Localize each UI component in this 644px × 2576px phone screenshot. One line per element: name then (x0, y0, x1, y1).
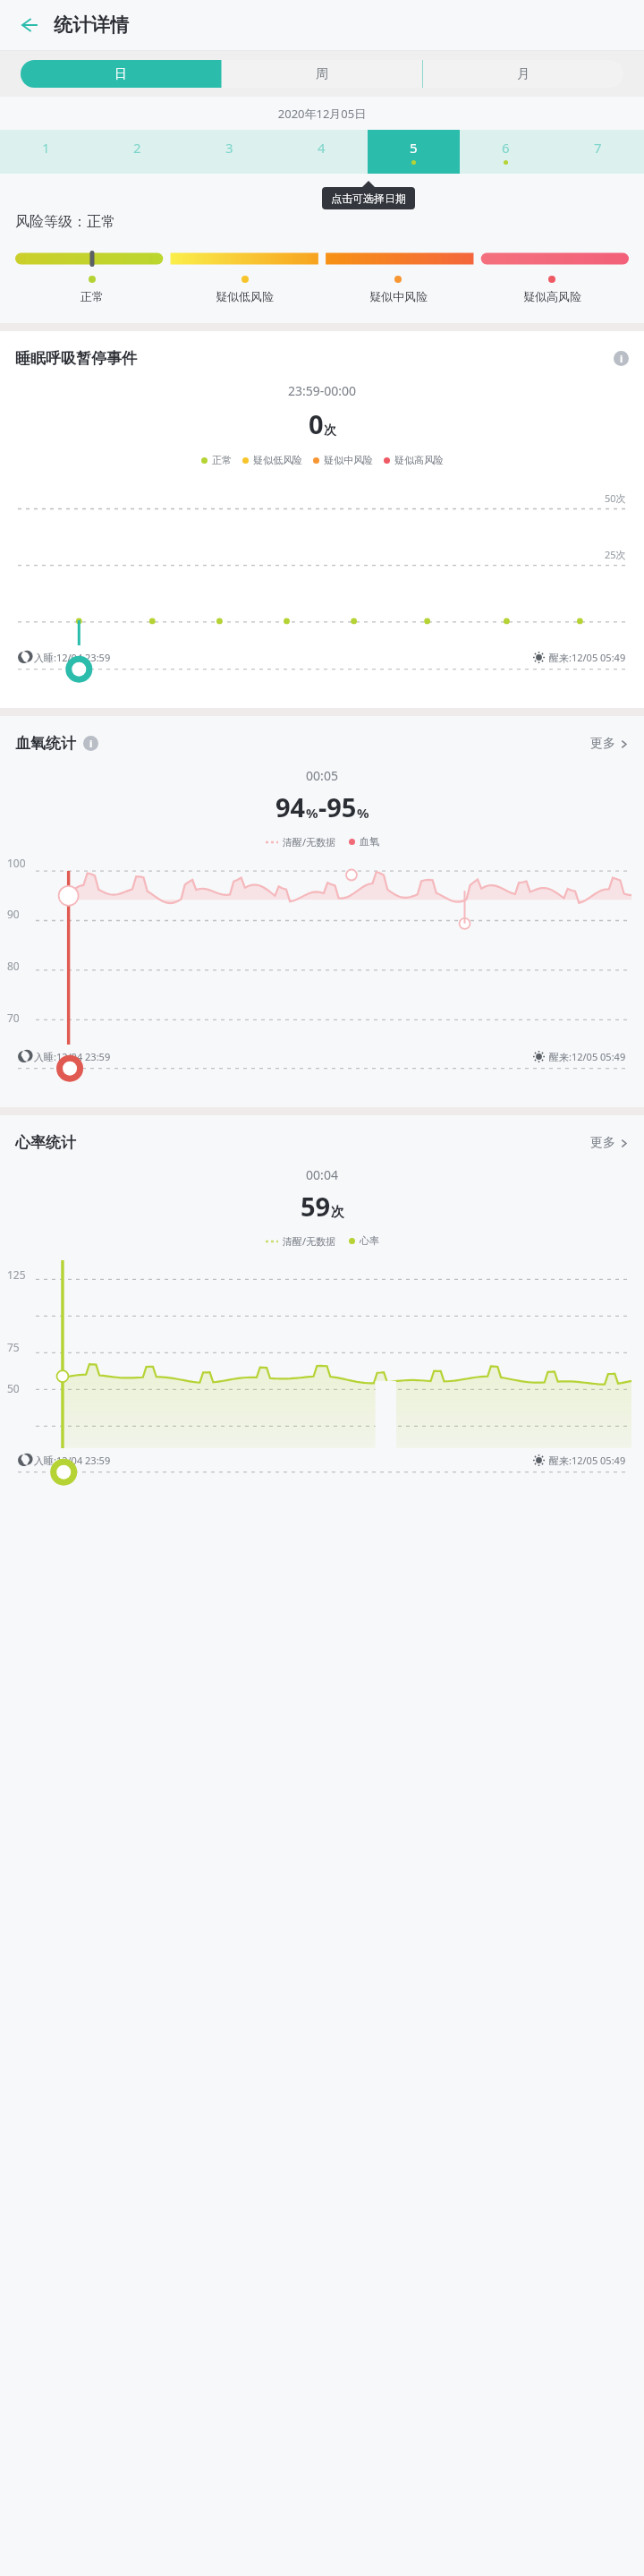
staticText: 23:59-00:00 (0, 382, 644, 399)
staticText: 00:05 (0, 767, 644, 784)
staticText: 疑似高风险 (523, 289, 581, 303)
staticText: 4 (318, 139, 326, 157)
staticText: 3 (225, 139, 233, 157)
button[interactable]: 4 (275, 130, 368, 174)
button[interactable]: 6 (460, 130, 552, 174)
staticText: 疑似低风险 (216, 289, 274, 303)
staticText: 入睡:12/04 23:59 (34, 1454, 111, 1467)
staticText: 90 (7, 907, 20, 921)
staticText: 醒来:12/05 05:49 (549, 1050, 626, 1063)
staticText: 心率 (360, 1234, 379, 1247)
staticText: i (620, 352, 623, 365)
staticText: 睡眠呼吸暂停事件 (15, 349, 137, 368)
staticText: 点击可选择日期 (331, 192, 406, 205)
staticText: 次 (324, 422, 336, 439)
button[interactable]: 1 (0, 130, 91, 174)
staticText: 正常 (212, 454, 232, 466)
staticText: 6 (502, 139, 510, 157)
staticText: % (306, 804, 318, 822)
staticText: 50次 (605, 491, 626, 505)
staticText: 统计详情 (54, 13, 129, 37)
staticText: 更多 (590, 736, 615, 752)
staticText: 00:04 (0, 1166, 644, 1183)
staticText: 清醒/无数据 (283, 1234, 336, 1248)
staticText: 风险等级：正常 (15, 213, 115, 231)
staticText: 入睡:12/04 23:59 (34, 1050, 111, 1063)
staticText: 5 (410, 139, 418, 157)
button[interactable]: 2 (91, 130, 183, 174)
staticText: 0 (309, 406, 324, 441)
staticText: 周 (316, 66, 328, 82)
button[interactable]: 3 (183, 130, 275, 174)
button[interactable]: 7 (552, 130, 644, 174)
button[interactable]: 月 (423, 60, 623, 88)
staticText: 7 (594, 139, 602, 157)
staticText: 2020年12月05日 (0, 106, 644, 122)
staticText: 59 (301, 1189, 331, 1224)
button[interactable]: 日 (21, 60, 221, 88)
button[interactable]: 周 (222, 60, 422, 88)
staticText: % (357, 804, 369, 822)
button[interactable]: Info (83, 736, 98, 751)
staticText: 血氧 (360, 835, 379, 848)
staticText: 醒来:12/05 05:49 (549, 651, 626, 664)
staticText: 血氧统计 (15, 734, 76, 753)
staticText: 70 (7, 1011, 20, 1025)
staticText: 75 (7, 1340, 20, 1354)
staticText: -95 (318, 789, 357, 824)
staticText: 疑似中风险 (324, 454, 373, 466)
staticText: 正常 (80, 289, 104, 303)
staticText: 100 (7, 856, 26, 870)
staticText: 入睡:12/04 23:59 (34, 651, 111, 664)
button[interactable]: 更多 (590, 1135, 629, 1151)
staticText: 更多 (590, 1135, 615, 1151)
staticText: 次 (331, 1204, 344, 1221)
staticText: 月 (517, 66, 530, 82)
button[interactable]: 5 (368, 130, 460, 174)
staticText: 清醒/无数据 (283, 835, 336, 849)
staticText: 94 (275, 789, 306, 824)
button[interactable]: Info (614, 351, 629, 366)
staticText: 日 (114, 66, 127, 82)
staticText: 80 (7, 959, 20, 973)
staticText: 125 (7, 1267, 26, 1282)
staticText: i (89, 737, 93, 750)
staticText: 疑似高风险 (394, 454, 444, 466)
staticText: 疑似低风险 (253, 454, 302, 466)
button[interactable]: Back (9, 5, 48, 45)
staticText: 1 (42, 139, 50, 157)
button[interactable]: 更多 (590, 736, 629, 752)
staticText: 心率统计 (15, 1133, 76, 1152)
staticText: 疑似中风险 (369, 289, 428, 303)
staticText: 醒来:12/05 05:49 (549, 1454, 626, 1467)
staticText: 25次 (605, 548, 626, 561)
staticText: 2 (133, 139, 141, 157)
staticText: 50 (7, 1381, 20, 1395)
